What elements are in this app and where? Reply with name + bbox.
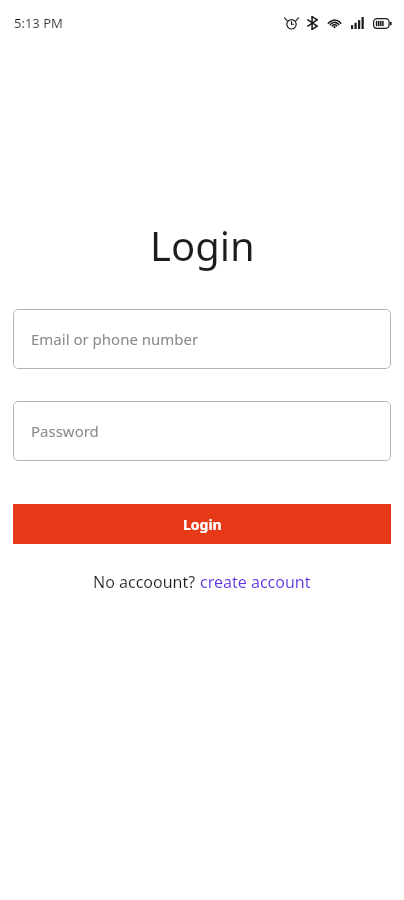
staticText: 5:13 PM	[14, 14, 63, 32]
other: Mobile signal	[351, 17, 364, 29]
button[interactable]: Password	[13, 401, 391, 461]
other: Bluetooth	[307, 16, 318, 30]
staticText: Login	[150, 218, 255, 272]
other: Alarm	[285, 17, 298, 30]
button[interactable]: create account	[200, 571, 311, 593]
staticText: Email or phone number	[31, 329, 199, 349]
staticText: Password	[31, 421, 99, 441]
staticText: No accoount?	[93, 571, 200, 593]
button[interactable]: Email or phone number	[13, 309, 391, 369]
button[interactable]: Login	[13, 504, 391, 544]
other: Battery	[373, 18, 392, 29]
staticText: Login	[183, 515, 222, 534]
other: Wi-Fi	[327, 17, 342, 29]
staticText: create account	[200, 571, 311, 593]
